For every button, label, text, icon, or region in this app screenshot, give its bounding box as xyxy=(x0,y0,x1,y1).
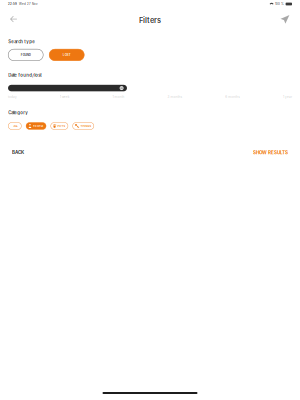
button[interactable]: FOUND xyxy=(8,49,43,61)
staticText: SHOW RESULTS xyxy=(253,150,288,155)
staticText: Filters xyxy=(139,16,161,25)
staticText: 1 week xyxy=(60,95,70,99)
staticText: 100 % xyxy=(275,2,284,6)
staticText: BACK xyxy=(12,150,24,155)
button[interactable]: Back xyxy=(7,12,20,27)
button[interactable]: Share xyxy=(277,12,293,28)
staticText: LOST xyxy=(63,53,71,57)
button[interactable]: BACK xyxy=(9,147,26,158)
staticText: Date found/lost xyxy=(8,73,42,78)
staticText: 6 months xyxy=(225,95,240,99)
button[interactable]: PETS xyxy=(51,122,68,129)
staticText: Search type xyxy=(8,39,35,44)
staticText: 3 months xyxy=(167,95,182,99)
staticText: 1 year xyxy=(283,95,292,99)
button[interactable]: SHOW RESULTS xyxy=(250,147,290,158)
staticText: today xyxy=(8,95,17,99)
staticText: Category xyxy=(8,110,28,115)
button[interactable]: THINGS xyxy=(73,122,94,129)
staticText: Wed 27 Nov xyxy=(19,2,38,6)
staticText: PEOPLE xyxy=(33,124,44,127)
staticText: ALL xyxy=(13,124,17,127)
button[interactable]: LOST xyxy=(49,49,84,61)
button[interactable]: ALL xyxy=(8,122,21,129)
staticText: PETS xyxy=(58,124,66,127)
staticText: THINGS xyxy=(80,124,91,127)
button[interactable]: PEOPLE xyxy=(26,122,46,129)
staticText: 1 month xyxy=(113,95,125,99)
staticText: 22:59 xyxy=(8,2,17,6)
staticText: FOUND xyxy=(21,53,31,57)
